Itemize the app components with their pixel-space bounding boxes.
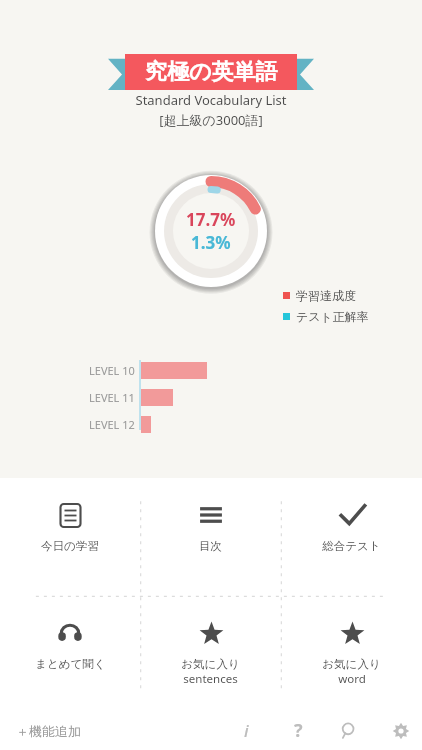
staticText: ＋機能追加 <box>16 723 81 739</box>
button[interactable]: ＋機能追加 <box>10 711 87 750</box>
button[interactable]: Help <box>280 711 316 750</box>
staticText: [超上級の3000語] <box>159 111 263 129</box>
button[interactable]: Search <box>331 711 367 750</box>
staticText: LEVEL 12 <box>89 417 135 432</box>
staticText: sentences <box>183 671 238 687</box>
button[interactable]: 総合テスト <box>281 478 422 596</box>
staticText: i <box>244 719 249 742</box>
staticText: LEVEL 10 <box>89 363 135 378</box>
staticText: テスト正解率 <box>296 309 369 324</box>
staticText: まとめて聞く <box>35 657 106 671</box>
staticText: お気に入り <box>322 657 381 671</box>
button[interactable]: まとめて聞く <box>0 596 140 711</box>
staticText: ? <box>294 718 303 743</box>
button[interactable]: 目次 <box>140 478 281 596</box>
staticText: LEVEL 11 <box>89 390 135 405</box>
button[interactable]: Settings <box>383 711 419 750</box>
staticText: 究極の英単語 <box>145 58 278 86</box>
staticText: 今日の学習 <box>41 539 99 553</box>
staticText: 1.3% <box>191 231 231 254</box>
staticText: お気に入り <box>181 657 240 671</box>
staticText: word <box>338 671 366 687</box>
staticText: 目次 <box>199 539 222 553</box>
staticText: 17.7% <box>186 208 236 231</box>
staticText: Standard Vocabulary List <box>135 91 287 109</box>
staticText: 総合テスト <box>322 539 381 553</box>
button[interactable]: お気に入り <box>140 596 281 711</box>
button[interactable]: Information <box>228 711 264 750</box>
button[interactable]: お気に入り <box>281 596 422 711</box>
staticText: 学習達成度 <box>296 288 356 303</box>
button[interactable]: 今日の学習 <box>0 478 140 596</box>
